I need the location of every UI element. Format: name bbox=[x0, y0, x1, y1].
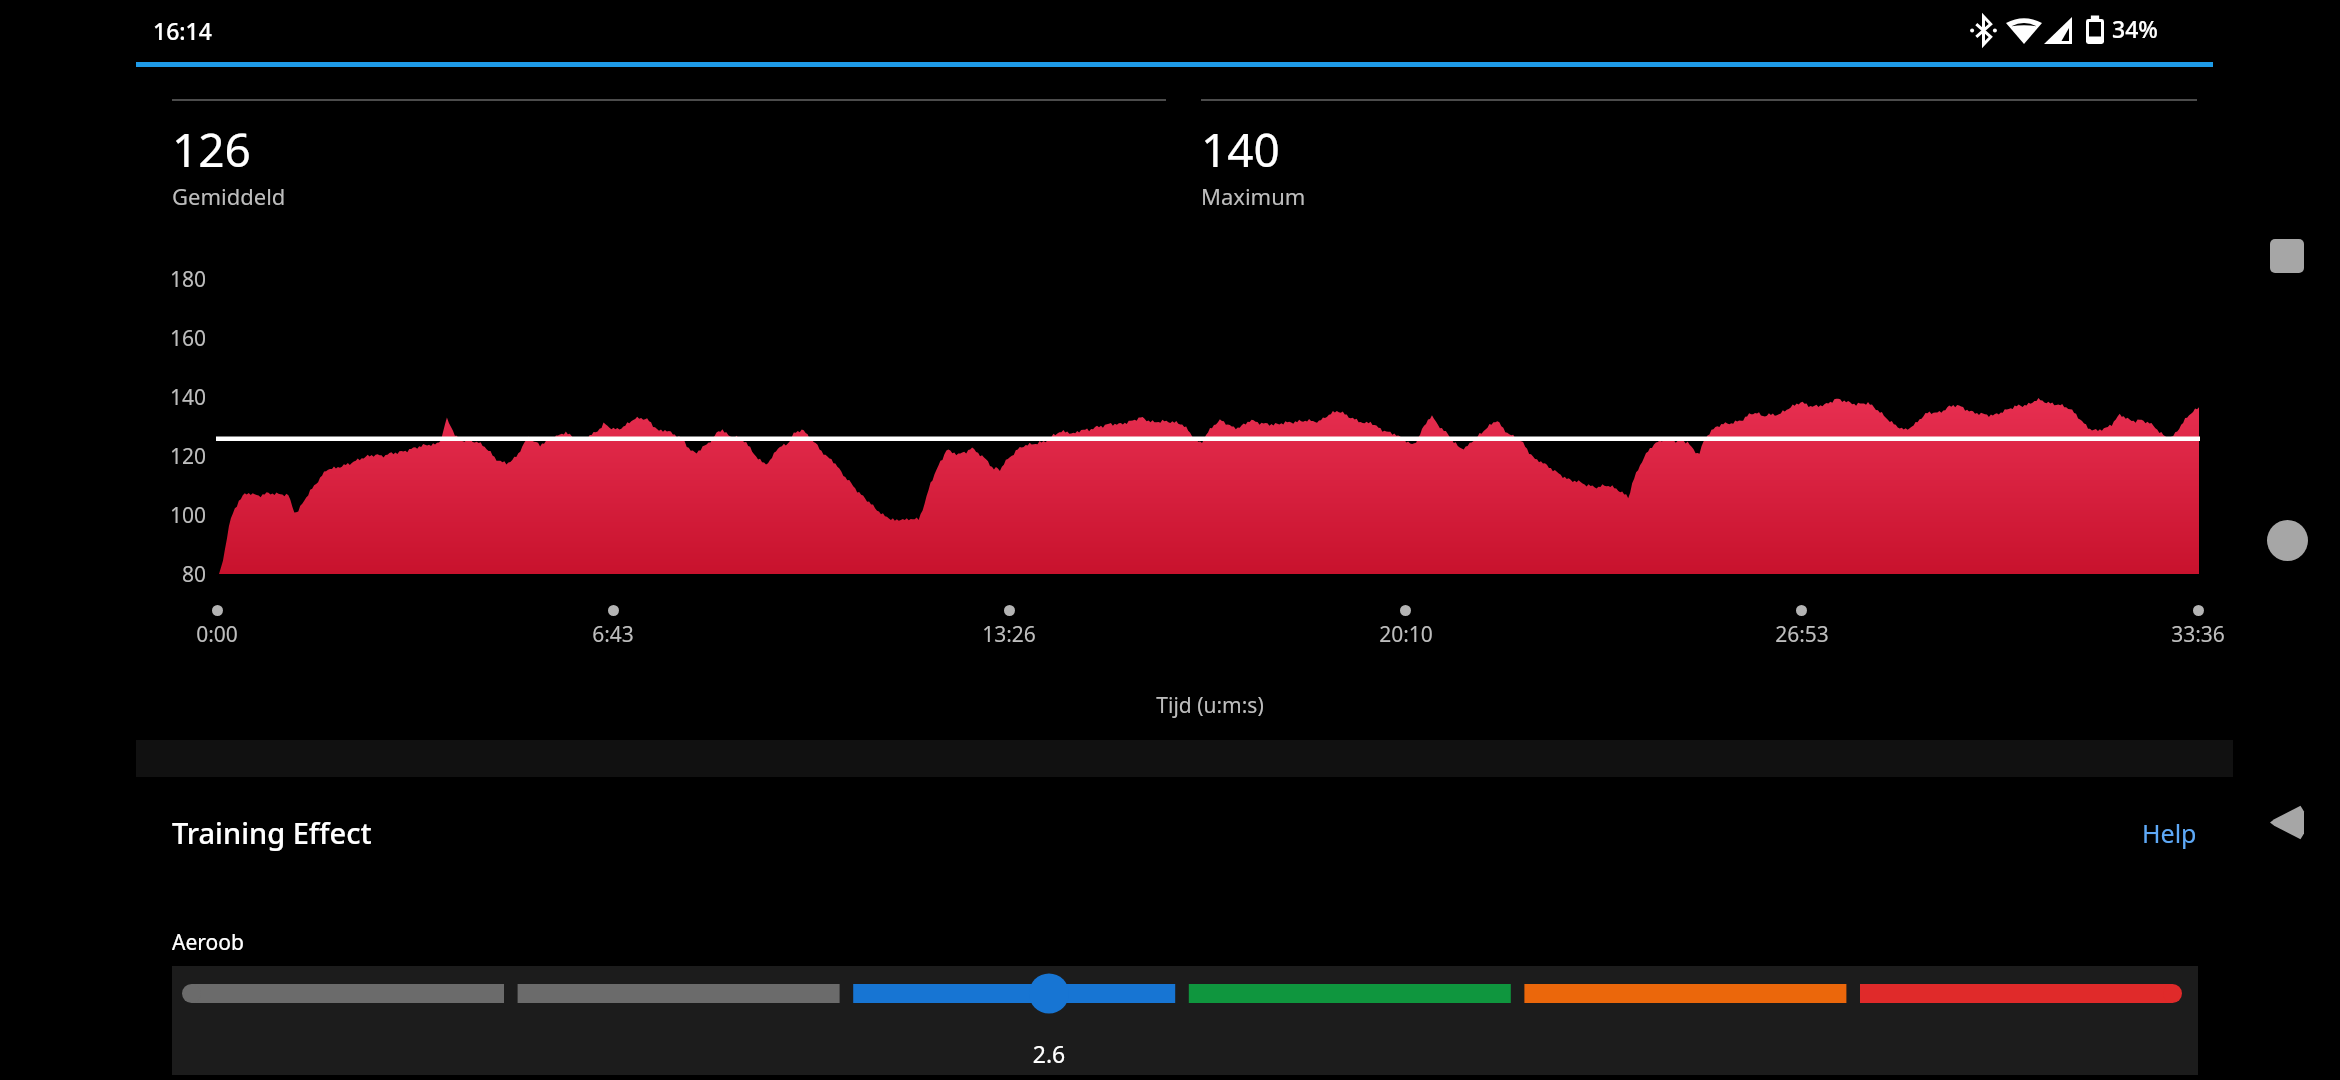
button[interactable]: Home bbox=[2254, 507, 2320, 573]
staticText: 13:26 bbox=[899, 620, 1119, 649]
staticText: 140 bbox=[1201, 118, 1280, 181]
staticText: 120 bbox=[102, 442, 206, 471]
staticText: Maximum bbox=[1201, 181, 1306, 211]
staticText: 126 bbox=[172, 118, 251, 181]
staticText: Aeroob bbox=[172, 928, 244, 957]
staticText: 140 bbox=[102, 383, 206, 412]
button[interactable]: Help bbox=[2110, 801, 2228, 865]
staticText: 100 bbox=[102, 501, 206, 530]
button[interactable]: 2.6 bbox=[172, 966, 2198, 1075]
staticText: 2.6 bbox=[989, 1038, 1109, 1069]
staticText: Gemiddeld bbox=[172, 181, 286, 211]
button[interactable]: 126 bbox=[172, 118, 1168, 218]
staticText: 0:00 bbox=[107, 620, 327, 649]
staticText: 16:14 bbox=[153, 15, 212, 46]
staticText: 6:43 bbox=[503, 620, 723, 649]
staticText: Training Effect bbox=[172, 813, 372, 852]
button[interactable]: Back bbox=[2254, 789, 2320, 855]
staticText: 160 bbox=[102, 324, 206, 353]
staticText: 26:53 bbox=[1692, 620, 1912, 649]
button[interactable]: 140 bbox=[1201, 118, 2197, 218]
staticText: 180 bbox=[102, 265, 206, 294]
staticText: 33:36 bbox=[2088, 620, 2308, 649]
staticText: 80 bbox=[102, 560, 206, 589]
staticText: Tijd (u:m:s) bbox=[1000, 691, 1420, 720]
staticText: 34% bbox=[2112, 13, 2158, 44]
button[interactable]: Recent apps bbox=[2254, 223, 2320, 289]
staticText: 20:10 bbox=[1296, 620, 1516, 649]
staticText: Help bbox=[2142, 816, 2197, 850]
